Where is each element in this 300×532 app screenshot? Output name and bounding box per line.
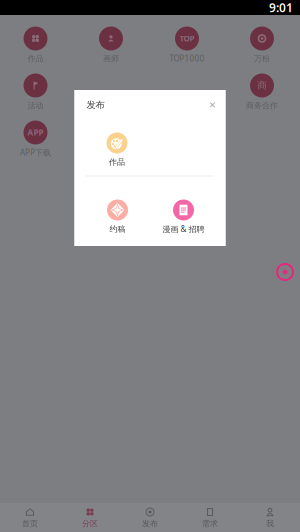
- button[interactable]: 万粉: [226, 26, 298, 62]
- staticText: 我: [266, 519, 274, 528]
- staticText: 需求: [202, 519, 218, 528]
- staticText: 作品: [109, 157, 125, 167]
- staticText: TOP1000: [169, 53, 204, 64]
- button[interactable]: 商: [226, 73, 298, 109]
- staticText: TOP: [179, 33, 194, 44]
- button[interactable]: 画师: [75, 26, 147, 62]
- button[interactable]: 发布: [120, 503, 180, 532]
- staticText: APP下载: [20, 147, 51, 158]
- staticText: 首页: [22, 519, 38, 528]
- button[interactable]: 首页: [0, 503, 60, 532]
- button[interactable]: 漫画 & 招聘: [151, 199, 215, 233]
- staticText: 活动: [27, 101, 43, 110]
- button[interactable]: Close: [202, 95, 222, 115]
- staticText: 作品: [27, 54, 43, 63]
- button[interactable]: 分区: [60, 503, 120, 532]
- button[interactable]: 活动: [0, 73, 71, 109]
- button[interactable]: APP: [0, 120, 71, 156]
- button[interactable]: Create: [275, 262, 295, 282]
- staticText: APP: [27, 127, 43, 138]
- staticText: 发布: [86, 99, 104, 111]
- staticText: 分区: [82, 519, 98, 528]
- staticText: 商务合作: [246, 101, 278, 110]
- button[interactable]: 约稿: [85, 199, 149, 233]
- staticText: 漫画 & 招聘: [162, 224, 204, 234]
- staticText: 商: [257, 80, 266, 91]
- button[interactable]: 作品: [85, 132, 149, 166]
- button[interactable]: 需求: [180, 503, 240, 532]
- staticText: 画师: [103, 54, 119, 63]
- staticText: 9:01: [269, 0, 293, 15]
- staticText: 发布: [142, 519, 158, 528]
- staticText: 万粉: [254, 54, 270, 63]
- button[interactable]: TOP: [151, 26, 223, 62]
- staticText: 约稿: [109, 224, 125, 234]
- button[interactable]: 作品: [0, 26, 71, 62]
- button[interactable]: 我: [240, 503, 300, 532]
- staticText: ✕: [208, 100, 216, 110]
